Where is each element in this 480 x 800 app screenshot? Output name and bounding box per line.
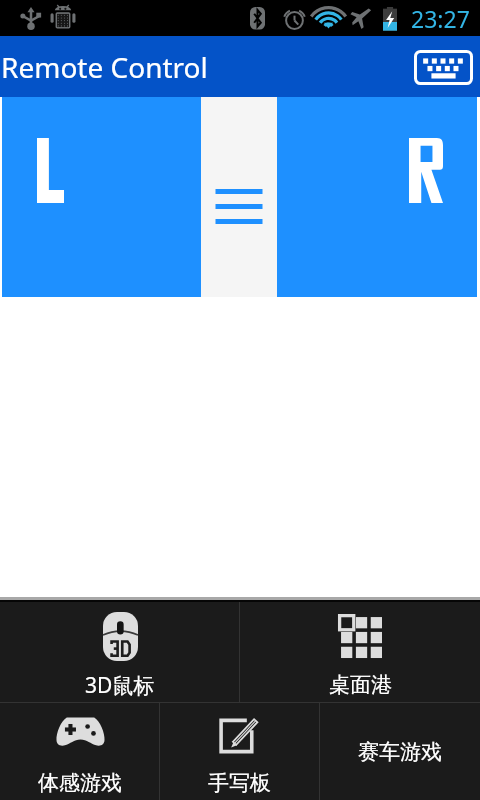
staticText: Remote Control: [1, 48, 208, 86]
button[interactable]: Menu: [201, 97, 277, 297]
button[interactable]: 3D鼠标: [0, 602, 239, 702]
staticText: 桌面港: [329, 672, 392, 698]
button[interactable]: 赛车游戏: [320, 703, 480, 800]
button[interactable]: Left click: [2, 97, 201, 297]
staticText: 3D鼠标: [85, 671, 155, 700]
button[interactable]: 体感游戏: [0, 703, 159, 800]
staticText: 23:27: [411, 3, 470, 34]
staticText: 赛车游戏: [358, 739, 442, 765]
button[interactable]: Right click: [277, 97, 477, 297]
button[interactable]: 手写板: [160, 703, 319, 800]
staticText: 体感游戏: [38, 770, 122, 796]
button[interactable]: Keyboard: [414, 49, 473, 85]
staticText: 手写板: [208, 770, 271, 796]
button[interactable]: 桌面港: [240, 602, 480, 702]
